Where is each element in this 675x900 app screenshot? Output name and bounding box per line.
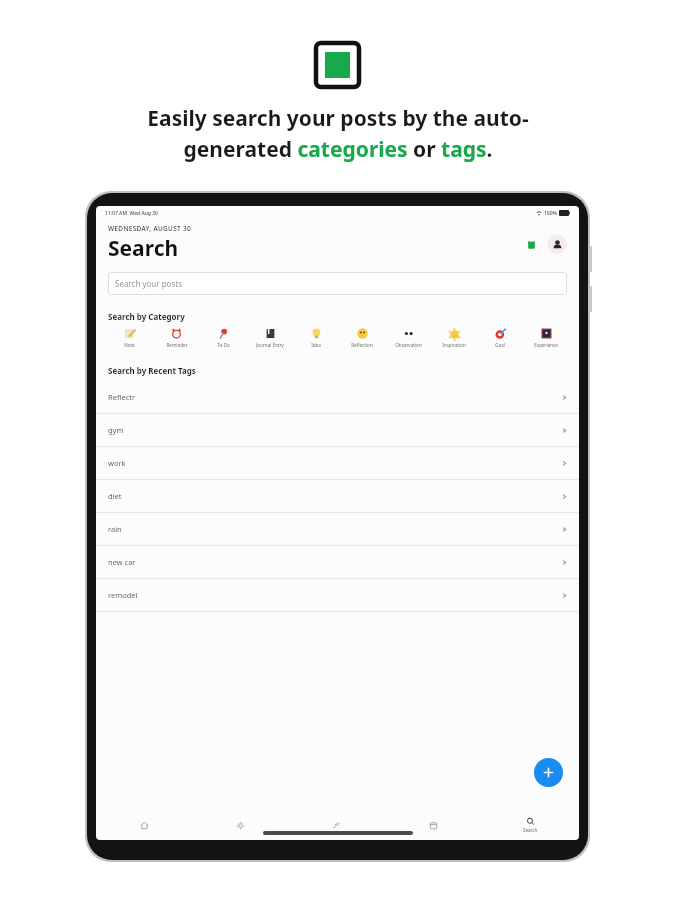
staticText: Search (523, 827, 538, 833)
staticText: gym (108, 425, 124, 435)
staticText: Easily search your posts by the auto- ge… (147, 104, 529, 163)
staticText: Search your posts (115, 278, 182, 289)
button[interactable]: Home (96, 810, 192, 840)
staticText: diet (108, 491, 122, 501)
button[interactable]: Search (482, 810, 579, 840)
staticText: new car (108, 557, 136, 567)
staticText: Reminder (166, 342, 188, 348)
button[interactable]: diet (96, 480, 579, 513)
button[interactable]: Reminder (153, 327, 200, 348)
staticText: Search by Recent Tags (108, 365, 196, 376)
staticText: Search (108, 234, 179, 263)
staticText: Journal Entry (256, 342, 284, 348)
staticText: To-Do (217, 342, 230, 348)
staticText: Inspiration (442, 342, 466, 348)
staticText: Idea (311, 342, 321, 348)
button[interactable]: Inspiration (431, 327, 477, 348)
staticText: remodel (108, 590, 138, 600)
button[interactable]: Reflection (339, 327, 385, 348)
button[interactable]: rain (96, 513, 579, 546)
staticText: Goal (495, 342, 505, 348)
button[interactable]: Notes (522, 235, 540, 253)
staticText: Experience (534, 342, 558, 348)
button[interactable]: Search your posts (108, 272, 567, 295)
button[interactable]: Reflectr (96, 381, 579, 414)
button[interactable]: Note (106, 327, 153, 348)
button[interactable]: remodel (96, 579, 579, 612)
button[interactable]: Idea (293, 327, 339, 348)
button[interactable]: new car (96, 546, 579, 579)
staticText: Reflection (351, 342, 373, 348)
button[interactable]: Insights (288, 810, 385, 840)
button[interactable]: Profile (547, 234, 567, 254)
staticText: WEDNESDAY, AUGUST 30 (108, 224, 192, 233)
staticText: rain (108, 524, 122, 534)
staticText: Reflectr (108, 392, 136, 402)
button[interactable]: Journal Entry (247, 327, 293, 348)
staticText: Observation (395, 342, 422, 348)
staticText: 11:07 AM Wed Aug 30 (105, 210, 158, 217)
button[interactable]: Add post (534, 758, 563, 787)
button[interactable]: gym (96, 414, 579, 447)
staticText: Search by Category (108, 311, 185, 322)
button[interactable]: Experience (523, 327, 569, 348)
button[interactable]: To-Do (200, 327, 247, 348)
staticText: work (108, 458, 126, 468)
button[interactable]: work (96, 447, 579, 480)
button[interactable]: Observation (385, 327, 431, 348)
button[interactable]: Goal (477, 327, 523, 348)
button[interactable]: Calendar (385, 810, 482, 840)
staticText: Note (124, 342, 135, 348)
staticText: 100% (544, 210, 557, 217)
button[interactable]: Settings (192, 810, 288, 840)
